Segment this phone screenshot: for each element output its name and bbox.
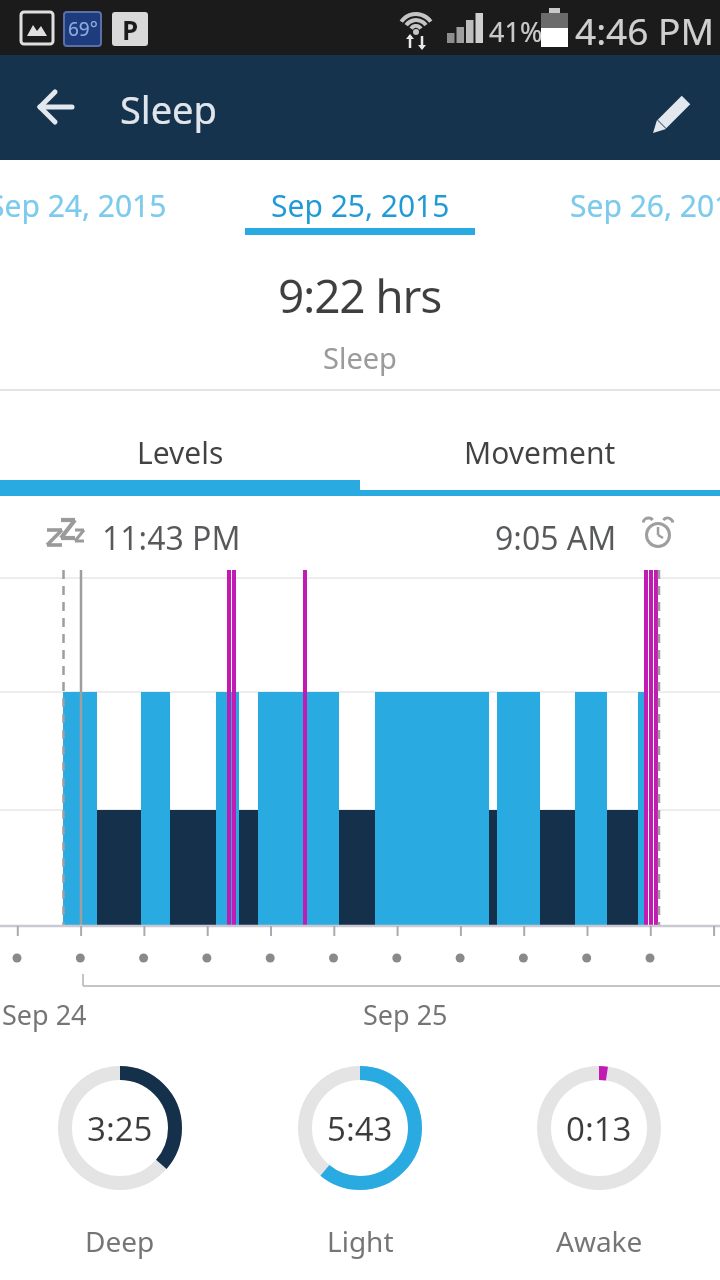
staticText: Sep 24 — [2, 996, 87, 1033]
staticText: 41% — [489, 13, 543, 50]
staticText: Awake — [556, 1222, 643, 1260]
staticText: 9:05 AM — [495, 516, 617, 560]
staticText: Sleep — [323, 338, 397, 377]
staticText: 9:22 hrs — [278, 264, 442, 327]
button[interactable]: Sep 24, 2015 — [0, 185, 167, 226]
button[interactable]: Levels — [0, 418, 360, 496]
staticText: Sep 26, 2015 — [570, 185, 720, 226]
staticText: Sleep — [120, 83, 217, 135]
button[interactable]: Movement — [360, 418, 720, 496]
staticText: 69° — [68, 16, 98, 42]
staticText: Movement — [464, 432, 616, 473]
staticText: P — [122, 12, 139, 46]
staticText: 11:43 PM — [102, 516, 241, 560]
staticText: Sep 25 — [363, 996, 448, 1033]
staticText: Light — [327, 1222, 394, 1260]
button[interactable]: Sep 26, 2015 — [570, 185, 720, 226]
staticText: Deep — [85, 1222, 155, 1260]
staticText: Sep 24, 2015 — [0, 185, 167, 226]
staticText: 4:46 PM — [575, 5, 714, 55]
button[interactable] — [28, 78, 86, 136]
staticText: 5:43 — [327, 1106, 393, 1151]
staticText: 3:25 — [87, 1106, 153, 1151]
button[interactable]: Sep 25, 2015 — [271, 185, 450, 226]
staticText: 0:13 — [566, 1106, 632, 1151]
staticText: Sep 25, 2015 — [271, 185, 450, 226]
button[interactable] — [640, 80, 704, 144]
staticText: Levels — [137, 432, 224, 473]
